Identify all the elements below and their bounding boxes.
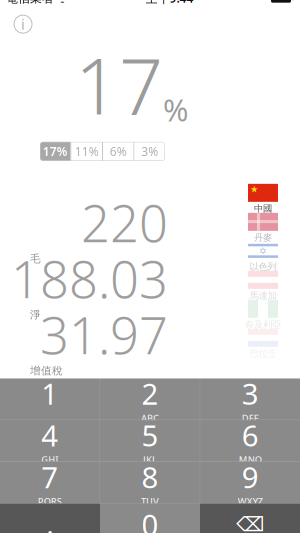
staticText: TUV <box>141 495 159 508</box>
button[interactable]: 6 <box>200 420 300 461</box>
staticText: PQRS <box>38 495 62 508</box>
button[interactable]: 8 <box>100 462 200 503</box>
staticText: 以色列 <box>249 261 276 272</box>
button[interactable]: 4 <box>0 420 100 461</box>
staticText: 4 <box>41 416 58 455</box>
staticText: 0 <box>141 505 158 533</box>
staticText: ABC <box>141 412 159 424</box>
staticText: 11% <box>75 143 99 159</box>
button[interactable]: . <box>0 504 100 533</box>
button[interactable]: 6% <box>103 142 133 161</box>
staticText: DEF <box>242 412 259 424</box>
staticText: 7 <box>41 457 58 496</box>
staticText: 9 <box>242 457 259 496</box>
button[interactable]: 9 <box>200 462 300 503</box>
staticText: 6 <box>242 416 259 455</box>
staticText: i <box>21 14 25 34</box>
staticText: 2 <box>141 374 158 413</box>
staticText: 丹麥 <box>254 232 272 243</box>
staticText: 毛 <box>30 252 41 265</box>
button[interactable]: 3 <box>200 378 300 419</box>
staticText: 增值稅 <box>30 364 63 377</box>
staticText: ✡ <box>259 246 267 256</box>
staticText: 馬達加 <box>249 290 276 301</box>
staticText: 6% <box>110 143 127 159</box>
staticText: 17 <box>75 33 163 136</box>
staticText: WXYZ <box>238 495 263 508</box>
staticText: ⌫ <box>236 513 264 533</box>
staticText: 17% <box>43 143 68 159</box>
staticText: . <box>46 507 53 533</box>
staticText: JKL <box>143 453 157 466</box>
button[interactable]: Delete <box>200 504 300 533</box>
staticText: 8 <box>141 457 158 496</box>
staticText: ★ <box>250 184 258 195</box>
button[interactable]: 2 <box>100 378 200 419</box>
button[interactable]: 11% <box>71 142 102 161</box>
button[interactable]: 3% <box>134 142 165 161</box>
button[interactable]: 0 <box>100 504 200 533</box>
button[interactable]: Info <box>14 15 32 33</box>
staticText: 1 <box>41 374 58 413</box>
staticText: ᯤ <box>54 0 68 6</box>
staticText: 3 <box>242 374 259 413</box>
button[interactable]: 1 <box>0 378 100 419</box>
staticText: 淨 <box>30 308 41 321</box>
staticText: 3% <box>141 143 158 159</box>
staticText: 上午9:44 <box>145 0 193 6</box>
staticText: 電信業者 <box>6 0 54 5</box>
button[interactable]: 17% <box>40 142 70 161</box>
staticText: 31.97 <box>40 301 168 368</box>
staticText: MNO <box>239 453 262 466</box>
staticText: 5 <box>141 416 158 455</box>
staticText: 中國 <box>254 203 272 214</box>
staticText: 奈及利亞 <box>245 319 281 330</box>
button[interactable]: 5 <box>100 420 200 461</box>
staticText: GHI <box>41 453 58 466</box>
staticText: % <box>163 89 188 130</box>
staticText: 220 <box>81 189 168 256</box>
staticText: 巴拉圭 <box>249 348 276 359</box>
button[interactable]: 7 <box>0 462 100 503</box>
staticText: 188.03 <box>11 245 168 312</box>
